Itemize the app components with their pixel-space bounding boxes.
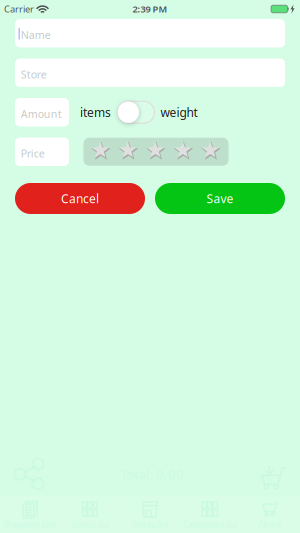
button[interactable]: Name (15, 19, 285, 47)
staticText: items (80, 104, 111, 120)
staticText: Carrier (4, 3, 34, 15)
staticText: Price (21, 146, 45, 160)
button[interactable]: Rating (83, 138, 228, 166)
button[interactable]: Stores list (120, 497, 180, 532)
button[interactable]: Shopping lists (0, 497, 60, 532)
button[interactable]: Cancel (15, 183, 145, 214)
button[interactable]: Store (15, 58, 285, 87)
staticText: Store (21, 67, 47, 81)
staticText: Name (21, 28, 51, 42)
button[interactable]: Amount (15, 98, 69, 126)
button[interactable]: Add all to cart (259, 458, 287, 490)
staticText: Goods list (71, 519, 109, 530)
staticText: 2:39 PM (132, 3, 167, 15)
staticText: Cancel (61, 190, 99, 206)
staticText: Categories list (183, 519, 237, 530)
button[interactable]: Goods list (60, 497, 120, 532)
button[interactable]: Price (15, 137, 69, 166)
button[interactable]: Items or weight (117, 101, 154, 123)
staticText: Save (206, 190, 233, 206)
button[interactable]: Categories list (180, 497, 240, 532)
staticText: weight (160, 104, 197, 120)
button[interactable]: Share (14, 458, 45, 490)
button[interactable]: Save (155, 183, 285, 214)
staticText: Amount (21, 107, 62, 121)
staticText: About (258, 519, 281, 530)
